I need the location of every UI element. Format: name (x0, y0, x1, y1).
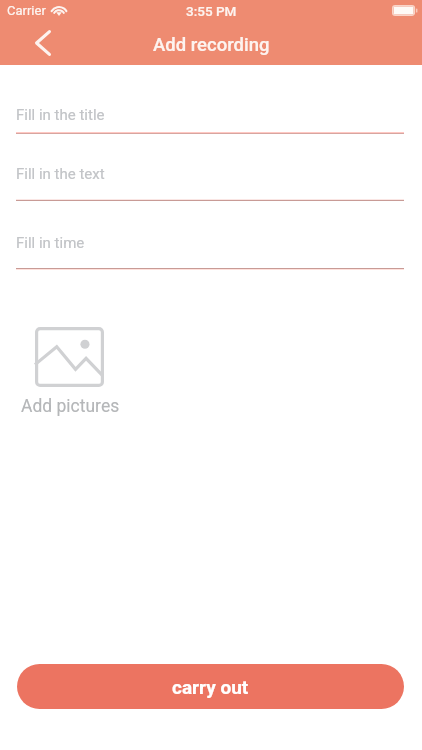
staticText: carry out (172, 676, 249, 698)
other: Add pictures (35, 327, 104, 387)
button[interactable]: carry out (17, 664, 404, 709)
staticText: Fill in the title (16, 106, 105, 124)
staticText: Carrier (7, 3, 46, 18)
staticText: Fill in the text (16, 165, 105, 183)
staticText: Add recording (153, 34, 270, 56)
staticText: Fill in time (16, 234, 85, 252)
button[interactable]: Back (21, 21, 65, 65)
button[interactable]: Add pictures (21, 327, 120, 417)
staticText: Add pictures (21, 396, 120, 417)
staticText: 3:55 PM (186, 3, 237, 19)
